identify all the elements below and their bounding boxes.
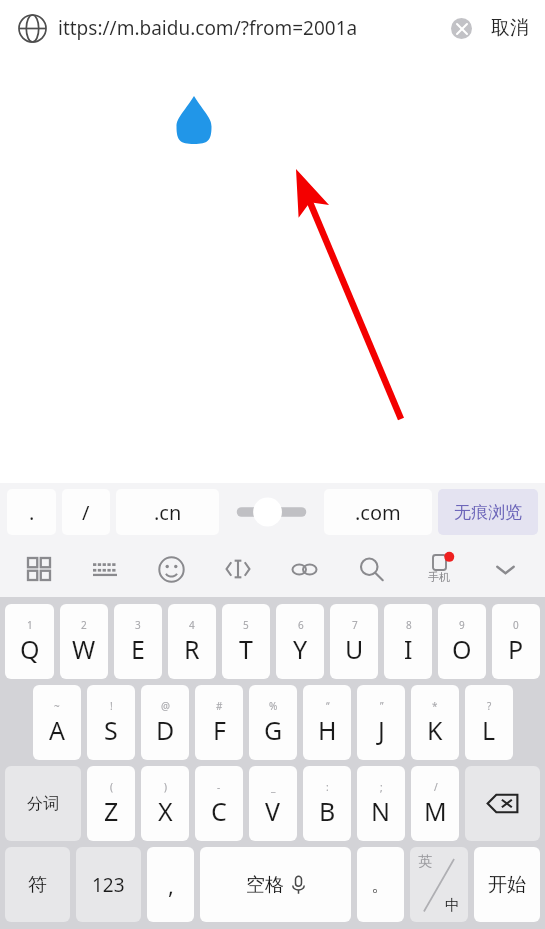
staticText: L (482, 713, 496, 747)
button[interactable]: Switch language (410, 847, 468, 922)
staticText: 5 (243, 618, 249, 632)
button[interactable]: / (62, 489, 110, 535)
staticText: % (269, 699, 278, 713)
button[interactable]: Backspace (465, 766, 540, 841)
button[interactable]: .cn (116, 489, 219, 535)
button[interactable]: 8 (384, 604, 432, 679)
button[interactable]: % (249, 685, 297, 760)
button[interactable]: Keyboard (72, 541, 138, 597)
staticText: , (168, 870, 174, 900)
staticText: D (156, 713, 175, 747)
button[interactable]: 符 (5, 847, 70, 922)
staticText: T (239, 632, 253, 666)
staticText: / (434, 780, 438, 794)
button[interactable]: , (147, 847, 194, 922)
button[interactable]: ? (465, 685, 513, 760)
staticText: 手机 (428, 570, 450, 584)
button[interactable]: 无痕浏览 (438, 489, 538, 535)
button[interactable]: ittps://m.baidu.com/?from=2001a (58, 15, 446, 41)
staticText: .com (355, 499, 401, 526)
button[interactable]: 4 (168, 604, 216, 679)
staticText: 123 (92, 872, 125, 898)
button[interactable]: Move cursor (204, 541, 271, 597)
button[interactable]: 空格 (200, 847, 351, 922)
button[interactable]: Apps (6, 541, 72, 597)
staticText: @ (161, 699, 170, 713)
button[interactable]: 3 (114, 604, 162, 679)
button[interactable]: 6 (276, 604, 324, 679)
button[interactable]: 123 (76, 847, 141, 922)
staticText: / (82, 499, 90, 526)
button[interactable]: Emoji (138, 541, 204, 597)
staticText: . (29, 499, 35, 526)
staticText: P (508, 632, 524, 666)
staticText: 中 (445, 896, 460, 915)
button[interactable]: .com (324, 489, 432, 535)
button[interactable]: : (303, 766, 351, 841)
button[interactable]: Hide keyboard (472, 541, 539, 597)
staticText: F (213, 713, 226, 747)
staticText: J (378, 713, 385, 747)
staticText: : (326, 780, 329, 794)
button[interactable]: ) (141, 766, 189, 841)
staticText: O (452, 632, 472, 666)
staticText: Z (104, 794, 119, 828)
staticText: ) (164, 780, 167, 794)
button[interactable]: 分词 (5, 766, 81, 841)
staticText: ! (110, 699, 113, 713)
button[interactable]: Clear (446, 13, 476, 43)
button[interactable]: Link (271, 541, 338, 597)
button[interactable]: ” (357, 685, 405, 760)
button[interactable]: 取消 (488, 8, 532, 48)
staticText: R (184, 632, 200, 666)
staticText: ~ (54, 699, 60, 713)
staticText: W (72, 632, 96, 666)
button[interactable]: 开始 (474, 847, 540, 922)
button[interactable]: . (7, 489, 56, 535)
button[interactable]: Toggle (225, 489, 318, 535)
staticText: .cn (154, 499, 182, 526)
button[interactable]: ; (357, 766, 405, 841)
button[interactable]: ! (87, 685, 135, 760)
staticText: 分词 (27, 794, 59, 814)
button[interactable]: 2 (60, 604, 108, 679)
button[interactable]: Search (338, 541, 405, 597)
staticText: ? (487, 699, 492, 713)
staticText: ittps://m.baidu.com/?from=2001a (58, 15, 358, 41)
staticText: 0 (513, 618, 519, 632)
button[interactable]: * (411, 685, 459, 760)
staticText: 3 (135, 618, 141, 632)
staticText: 取消 (491, 16, 529, 40)
button[interactable]: Phone (405, 541, 472, 597)
button[interactable]: 5 (222, 604, 270, 679)
staticText: M (424, 794, 447, 828)
button[interactable]: / (411, 766, 459, 841)
staticText: C (211, 794, 227, 828)
staticText: # (216, 699, 223, 713)
button[interactable]: 7 (330, 604, 378, 679)
button[interactable]: 0 (492, 604, 540, 679)
button[interactable]: ( (87, 766, 135, 841)
button[interactable]: # (195, 685, 243, 760)
staticText: U (345, 632, 364, 666)
button[interactable]: 9 (438, 604, 486, 679)
staticText: G (264, 713, 283, 747)
staticText: _ (271, 780, 276, 794)
staticText: N (371, 794, 391, 828)
button[interactable]: Site info (13, 9, 51, 47)
staticText: 无痕浏览 (454, 502, 522, 523)
staticText: 6 (298, 618, 304, 632)
staticText: B (319, 794, 336, 828)
button[interactable]: - (195, 766, 243, 841)
staticText: 开始 (488, 873, 526, 897)
button[interactable]: 1 (5, 604, 54, 679)
staticText: ; (380, 780, 383, 794)
button[interactable]: @ (141, 685, 189, 760)
staticText: 8 (406, 618, 412, 632)
button[interactable]: 。 (357, 847, 404, 922)
staticText: V (265, 794, 281, 828)
button[interactable]: ~ (33, 685, 81, 760)
button[interactable]: _ (249, 766, 297, 841)
staticText: 英 (418, 853, 432, 871)
button[interactable]: “ (303, 685, 351, 760)
